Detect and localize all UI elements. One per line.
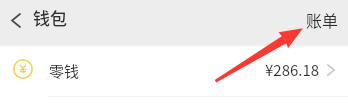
staticText: ¥286.18 xyxy=(265,59,320,81)
staticText: 账单 xyxy=(306,8,339,31)
staticText: 钱包 xyxy=(33,5,67,30)
staticText: 零钱 xyxy=(49,60,80,82)
button[interactable]: 账单 xyxy=(296,4,346,44)
button[interactable]: 零钱 xyxy=(0,47,348,96)
button[interactable]: Back xyxy=(0,4,32,44)
